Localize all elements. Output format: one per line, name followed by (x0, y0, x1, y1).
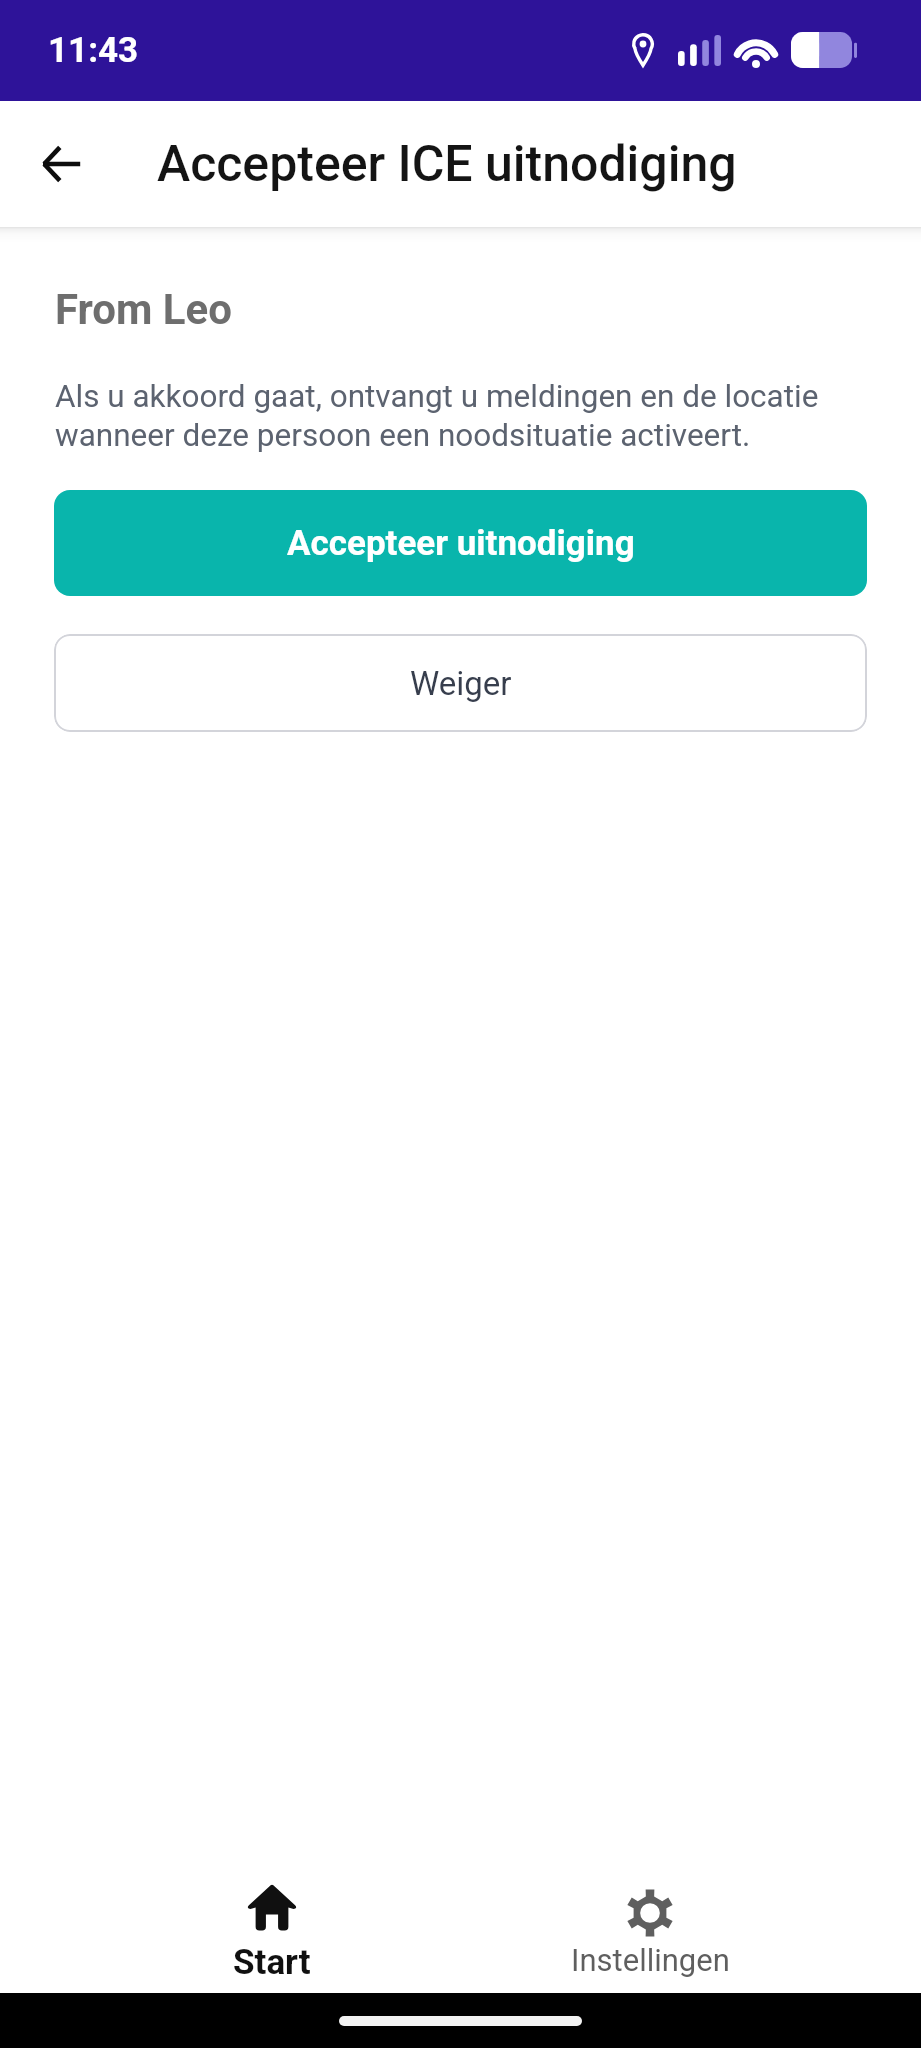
button[interactable]: Back (28, 131, 94, 197)
staticText: Accepteer uitnodiging (287, 523, 635, 564)
staticText: Accepteer ICE uitnodiging (157, 135, 737, 194)
staticText: Weiger (410, 664, 512, 703)
staticText: Instellingen (571, 1942, 730, 1978)
staticText: Start (233, 1942, 311, 1983)
staticText: Als u akkoord gaat, ontvangt u meldingen… (55, 378, 881, 454)
button[interactable]: Instellingen (461, 1831, 839, 1993)
staticText: 11:43 (48, 30, 139, 71)
button[interactable]: Start (83, 1831, 461, 1993)
staticText: From Leo (55, 285, 232, 334)
button[interactable]: Weiger (54, 634, 867, 732)
button[interactable]: Accepteer uitnodiging (54, 490, 867, 596)
